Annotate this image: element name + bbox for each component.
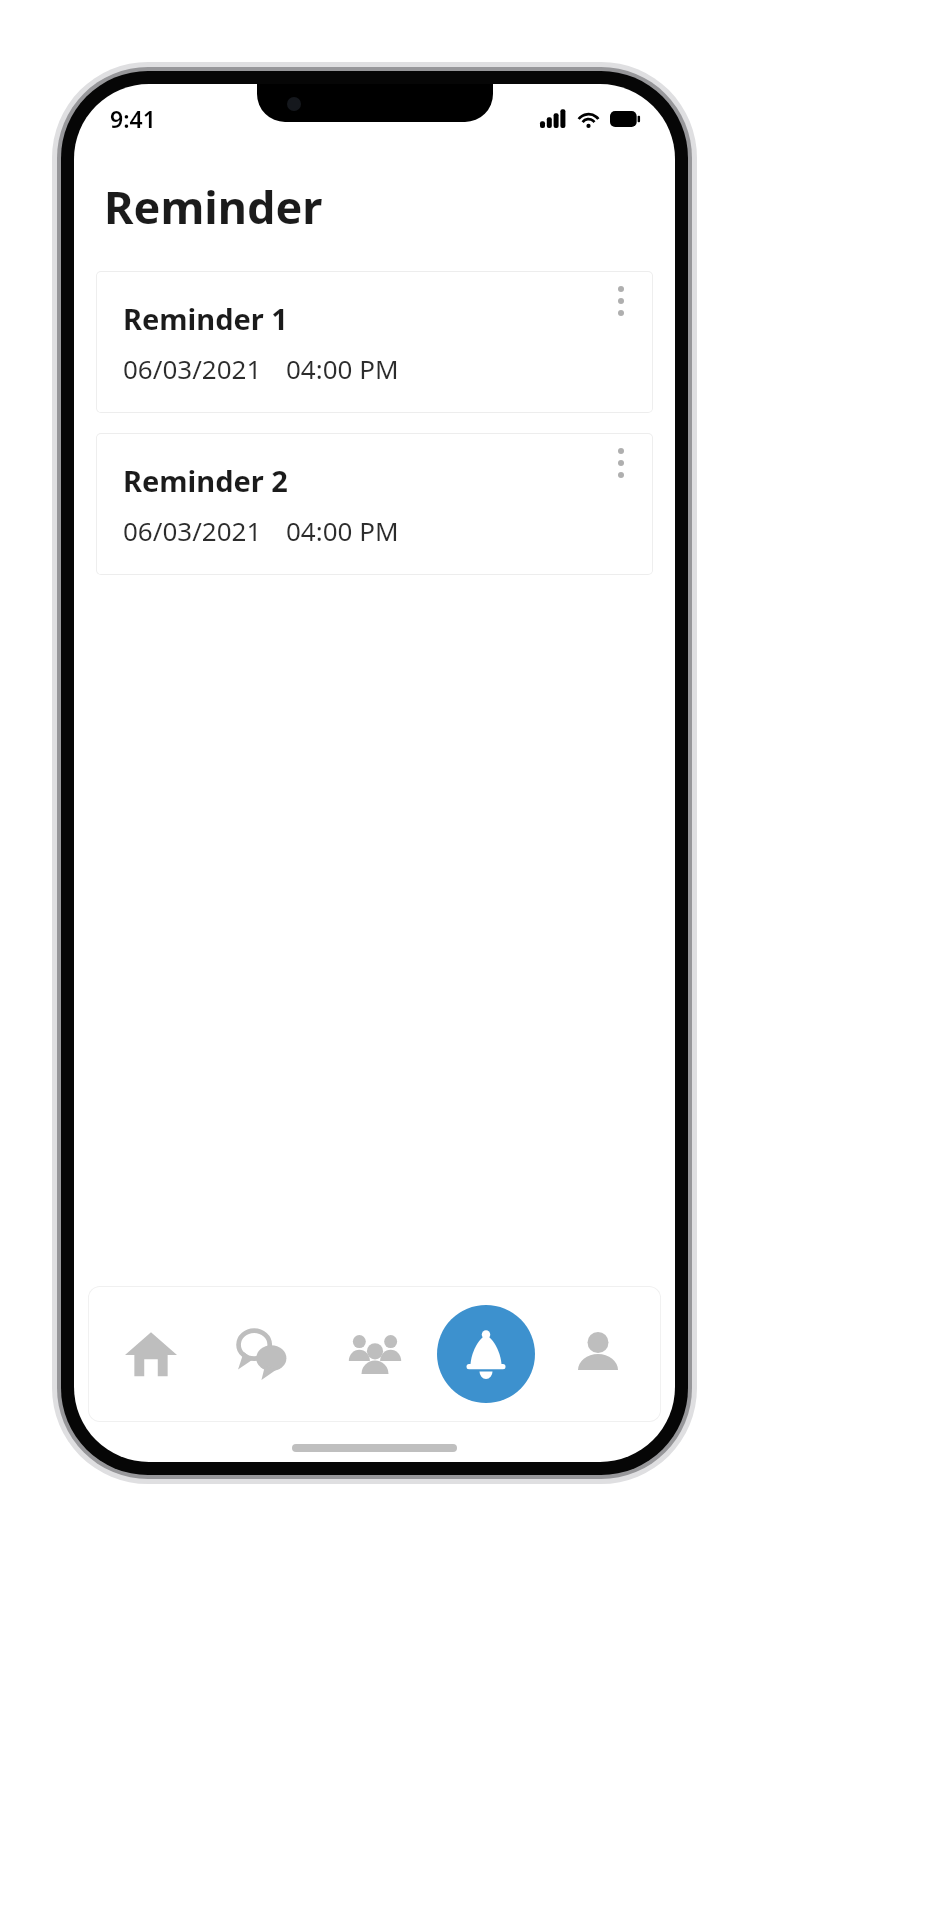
staticText: 06/03/2021 xyxy=(123,513,262,548)
staticText: 9:41 xyxy=(110,103,156,134)
button[interactable]: More options xyxy=(597,277,645,325)
staticText: Reminder 2 xyxy=(123,461,288,500)
staticText: 06/03/2021 xyxy=(123,351,262,386)
button[interactable]: More options xyxy=(597,439,645,487)
button[interactable]: Reminder 1 xyxy=(96,271,653,413)
button[interactable]: Reminder 2 xyxy=(96,433,653,575)
button[interactable]: Profile xyxy=(549,1305,647,1403)
staticText: Reminder 1 xyxy=(123,299,288,338)
button[interactable]: Messages xyxy=(214,1305,312,1403)
staticText: Reminder xyxy=(104,176,323,237)
staticText: 04:00 PM xyxy=(286,513,399,548)
button[interactable]: Groups xyxy=(326,1305,424,1403)
button[interactable]: Home xyxy=(102,1305,200,1403)
staticText: 04:00 PM xyxy=(286,351,399,386)
button[interactable]: Reminders xyxy=(437,1305,535,1403)
